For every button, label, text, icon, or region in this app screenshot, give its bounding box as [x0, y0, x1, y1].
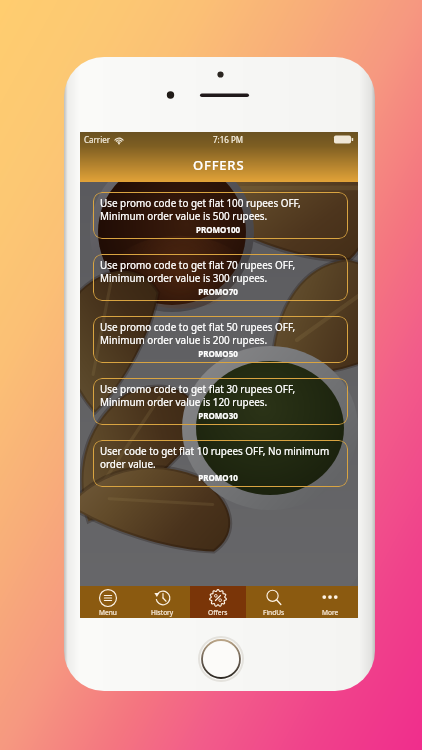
staticText: Use promo code to get flat 100 rupees OF… [100, 196, 301, 209]
staticText: PROMO10 [100, 472, 336, 483]
staticText: Use promo code to get flat 50 rupees OFF… [100, 320, 296, 333]
staticText: Minimum order value is 200 rupees. [100, 333, 268, 346]
button[interactable]: Use promo code to get flat 100 rupees OF… [93, 192, 348, 239]
staticText: Carrier [84, 134, 111, 145]
staticText: Minimum order value is 300 rupees. [100, 271, 268, 284]
staticText: PROMO100 [100, 224, 336, 235]
staticText: More [322, 608, 339, 617]
staticText: order value. [100, 457, 156, 470]
staticText: FindUs [263, 608, 285, 617]
staticText: Offers [208, 608, 228, 617]
button[interactable]: FindUs [246, 586, 302, 618]
staticText: User code to get flat 10 rupees OFF, No … [100, 444, 330, 457]
button[interactable]: Use promo code to get flat 30 rupees OFF… [93, 378, 348, 425]
button[interactable]: More [302, 586, 358, 618]
staticText: Use promo code to get flat 30 rupees OFF… [100, 382, 296, 395]
staticText: 7:16 PM [213, 134, 244, 145]
button[interactable]: History [135, 586, 190, 618]
staticText: OFFERS [193, 156, 245, 174]
staticText: PROMO70 [100, 286, 336, 297]
staticText: PROMO30 [100, 410, 336, 421]
button[interactable]: User code to get flat 10 rupees OFF, No … [93, 440, 348, 487]
staticText: PROMO50 [100, 348, 336, 359]
staticText: Use promo code to get flat 70 rupees OFF… [100, 258, 296, 271]
staticText: History [151, 608, 174, 617]
button[interactable]: Use promo code to get flat 50 rupees OFF… [93, 316, 348, 363]
button[interactable]: Offers [190, 586, 246, 618]
button[interactable]: Use promo code to get flat 70 rupees OFF… [93, 254, 348, 301]
button[interactable]: Menu [80, 586, 135, 618]
staticText: Minimum order value is 500 rupees. [100, 209, 268, 222]
staticText: Minimum order value is 120 rupees. [100, 395, 268, 408]
staticText: Menu [99, 608, 117, 617]
